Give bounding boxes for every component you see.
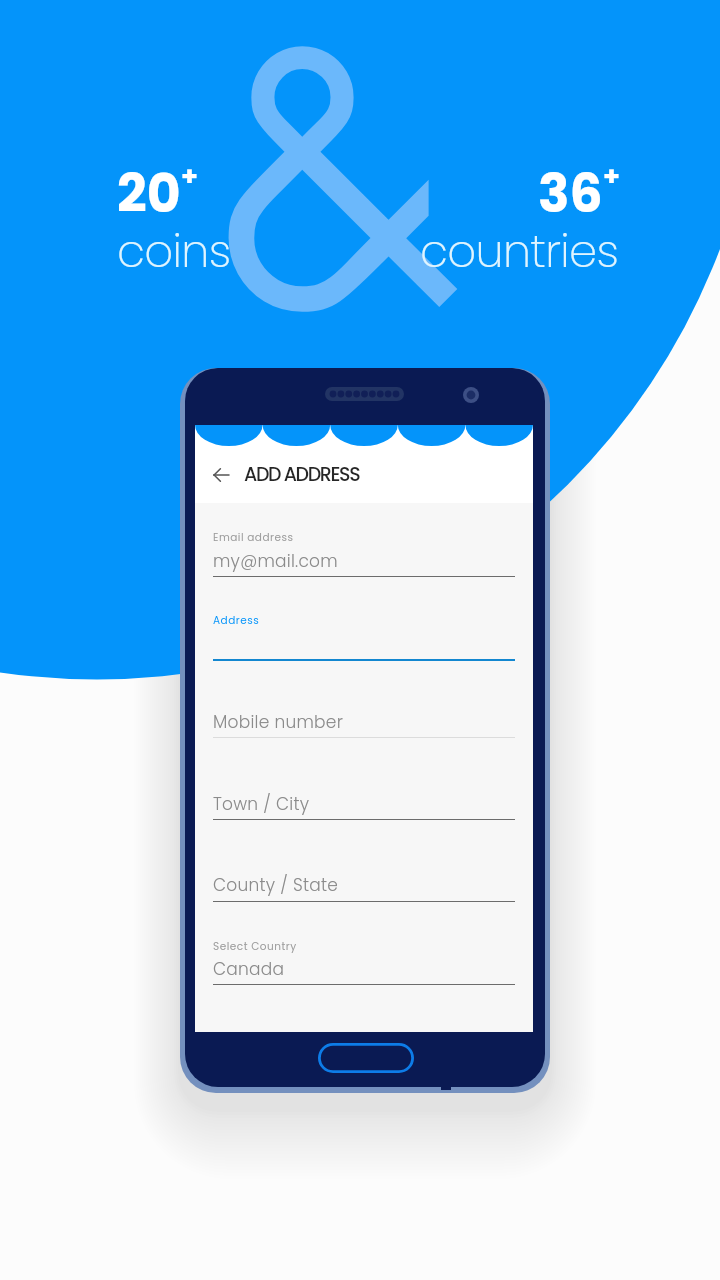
staticText: 36 xyxy=(538,157,603,230)
staticText: Address xyxy=(213,613,260,628)
staticText: countries xyxy=(420,220,619,283)
staticText: & xyxy=(214,0,472,398)
staticText: my@mail.com xyxy=(213,549,338,573)
staticText: Town / City xyxy=(213,792,310,816)
staticText: + xyxy=(181,158,198,196)
staticText: 20 xyxy=(117,157,181,230)
staticText: ADD ADDRESS xyxy=(244,461,360,488)
staticText: Mobile number xyxy=(213,710,344,734)
staticText: + xyxy=(603,158,620,196)
staticText: Select Country xyxy=(213,939,297,954)
staticText: Email address xyxy=(213,530,294,545)
button[interactable]: Home xyxy=(318,1043,414,1073)
staticText: County / State xyxy=(213,873,339,897)
staticText: coins xyxy=(117,220,231,283)
button[interactable]: Back xyxy=(203,457,239,493)
staticText: Canada xyxy=(213,957,285,981)
